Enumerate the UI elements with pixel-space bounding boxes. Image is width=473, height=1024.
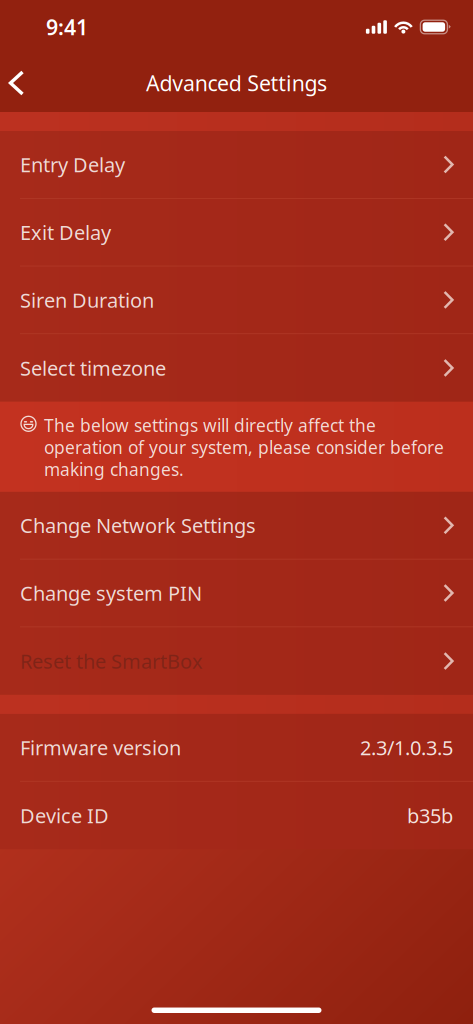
staticText: Siren Duration — [20, 287, 154, 313]
staticText: Firmware version — [20, 734, 181, 761]
staticText: Advanced Settings — [146, 69, 327, 97]
button[interactable]: Change Network Settings — [0, 492, 473, 559]
button[interactable]: Change system PIN — [0, 559, 473, 627]
staticText: Change system PIN — [20, 580, 202, 606]
staticText: b35b — [407, 802, 453, 829]
staticText: Exit Delay — [20, 219, 111, 245]
staticText: 9:41 — [46, 13, 88, 41]
staticText: Device ID — [20, 802, 109, 829]
staticText: Select timezone — [20, 355, 166, 381]
staticText: Entry Delay — [20, 151, 125, 178]
button[interactable]: Reset the SmartBox — [0, 627, 473, 695]
button[interactable]: Select timezone — [0, 334, 473, 402]
staticText: 2.3/1.0.3.5 — [360, 734, 453, 761]
button[interactable]: Exit Delay — [0, 199, 473, 266]
staticText: The below settings will directly affect … — [44, 414, 444, 481]
staticText: Change Network Settings — [20, 512, 256, 539]
button[interactable]: Entry Delay — [0, 131, 473, 199]
button[interactable]: Siren Duration — [0, 266, 473, 334]
staticText: Reset the SmartBox — [20, 648, 203, 674]
button[interactable]: Back — [0, 54, 41, 112]
